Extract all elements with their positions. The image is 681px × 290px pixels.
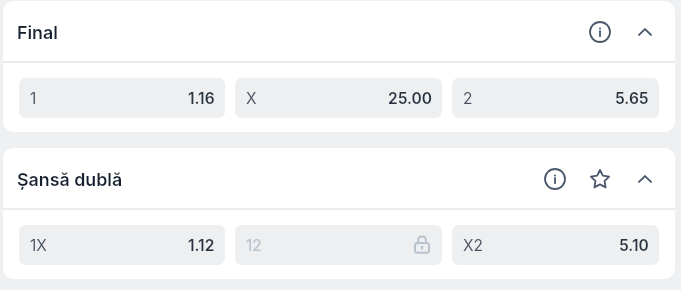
staticText: 2 [463,89,473,108]
button[interactable]: Collapse market [622,156,667,201]
button[interactable]: X [235,78,442,118]
staticText: 1.16 [188,89,215,108]
button[interactable]: Final [3,1,675,61]
staticText: 1 [30,89,37,108]
button[interactable]: 12 [235,225,442,265]
button[interactable]: Market info [577,9,622,54]
staticText: Final [17,22,58,44]
staticText: 1X [30,236,47,255]
staticText: 1.12 [188,236,215,255]
button[interactable]: Market info [532,156,577,201]
staticText: X2 [463,236,484,255]
button[interactable]: 1X [19,225,225,265]
button[interactable]: Add to favourites [577,156,622,201]
button[interactable]: 2 [452,78,659,118]
button[interactable]: X2 [452,225,659,265]
staticText: 25.00 [388,89,432,108]
button[interactable]: Șansă dublă [3,148,675,208]
staticText: 12 [246,236,262,255]
staticText: 5.10 [619,236,649,255]
button[interactable]: 1 [19,78,225,118]
staticText: 5.65 [615,89,649,108]
staticText: Șansă dublă [17,169,123,191]
button[interactable]: Collapse market [622,9,667,54]
staticText: X [246,89,257,108]
